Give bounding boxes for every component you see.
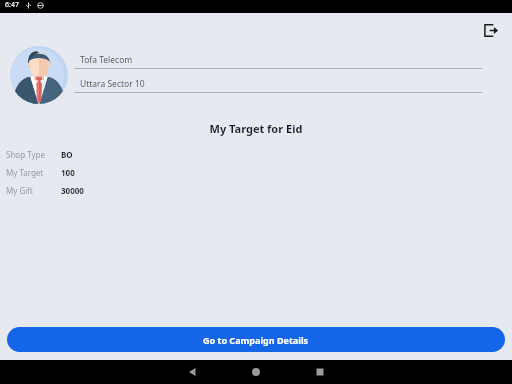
- staticText: BO: [61, 149, 73, 160]
- staticText: 100: [61, 167, 75, 178]
- staticText: Uttara Sector 10: [80, 78, 145, 90]
- staticText: My Target for Eid: [0, 121, 512, 136]
- staticText: Tofa Telecom: [80, 54, 133, 66]
- staticText: My Gift: [6, 185, 33, 196]
- staticText: 30000: [61, 185, 84, 196]
- staticText: 6:47: [5, 0, 19, 10]
- staticText: My Target: [6, 167, 44, 178]
- staticText: Shop Type: [6, 149, 45, 160]
- button[interactable]: Go to Campaign Details: [7, 327, 505, 352]
- button[interactable]: Logout: [476, 16, 504, 44]
- staticText: Go to Campaign Details: [203, 334, 309, 346]
